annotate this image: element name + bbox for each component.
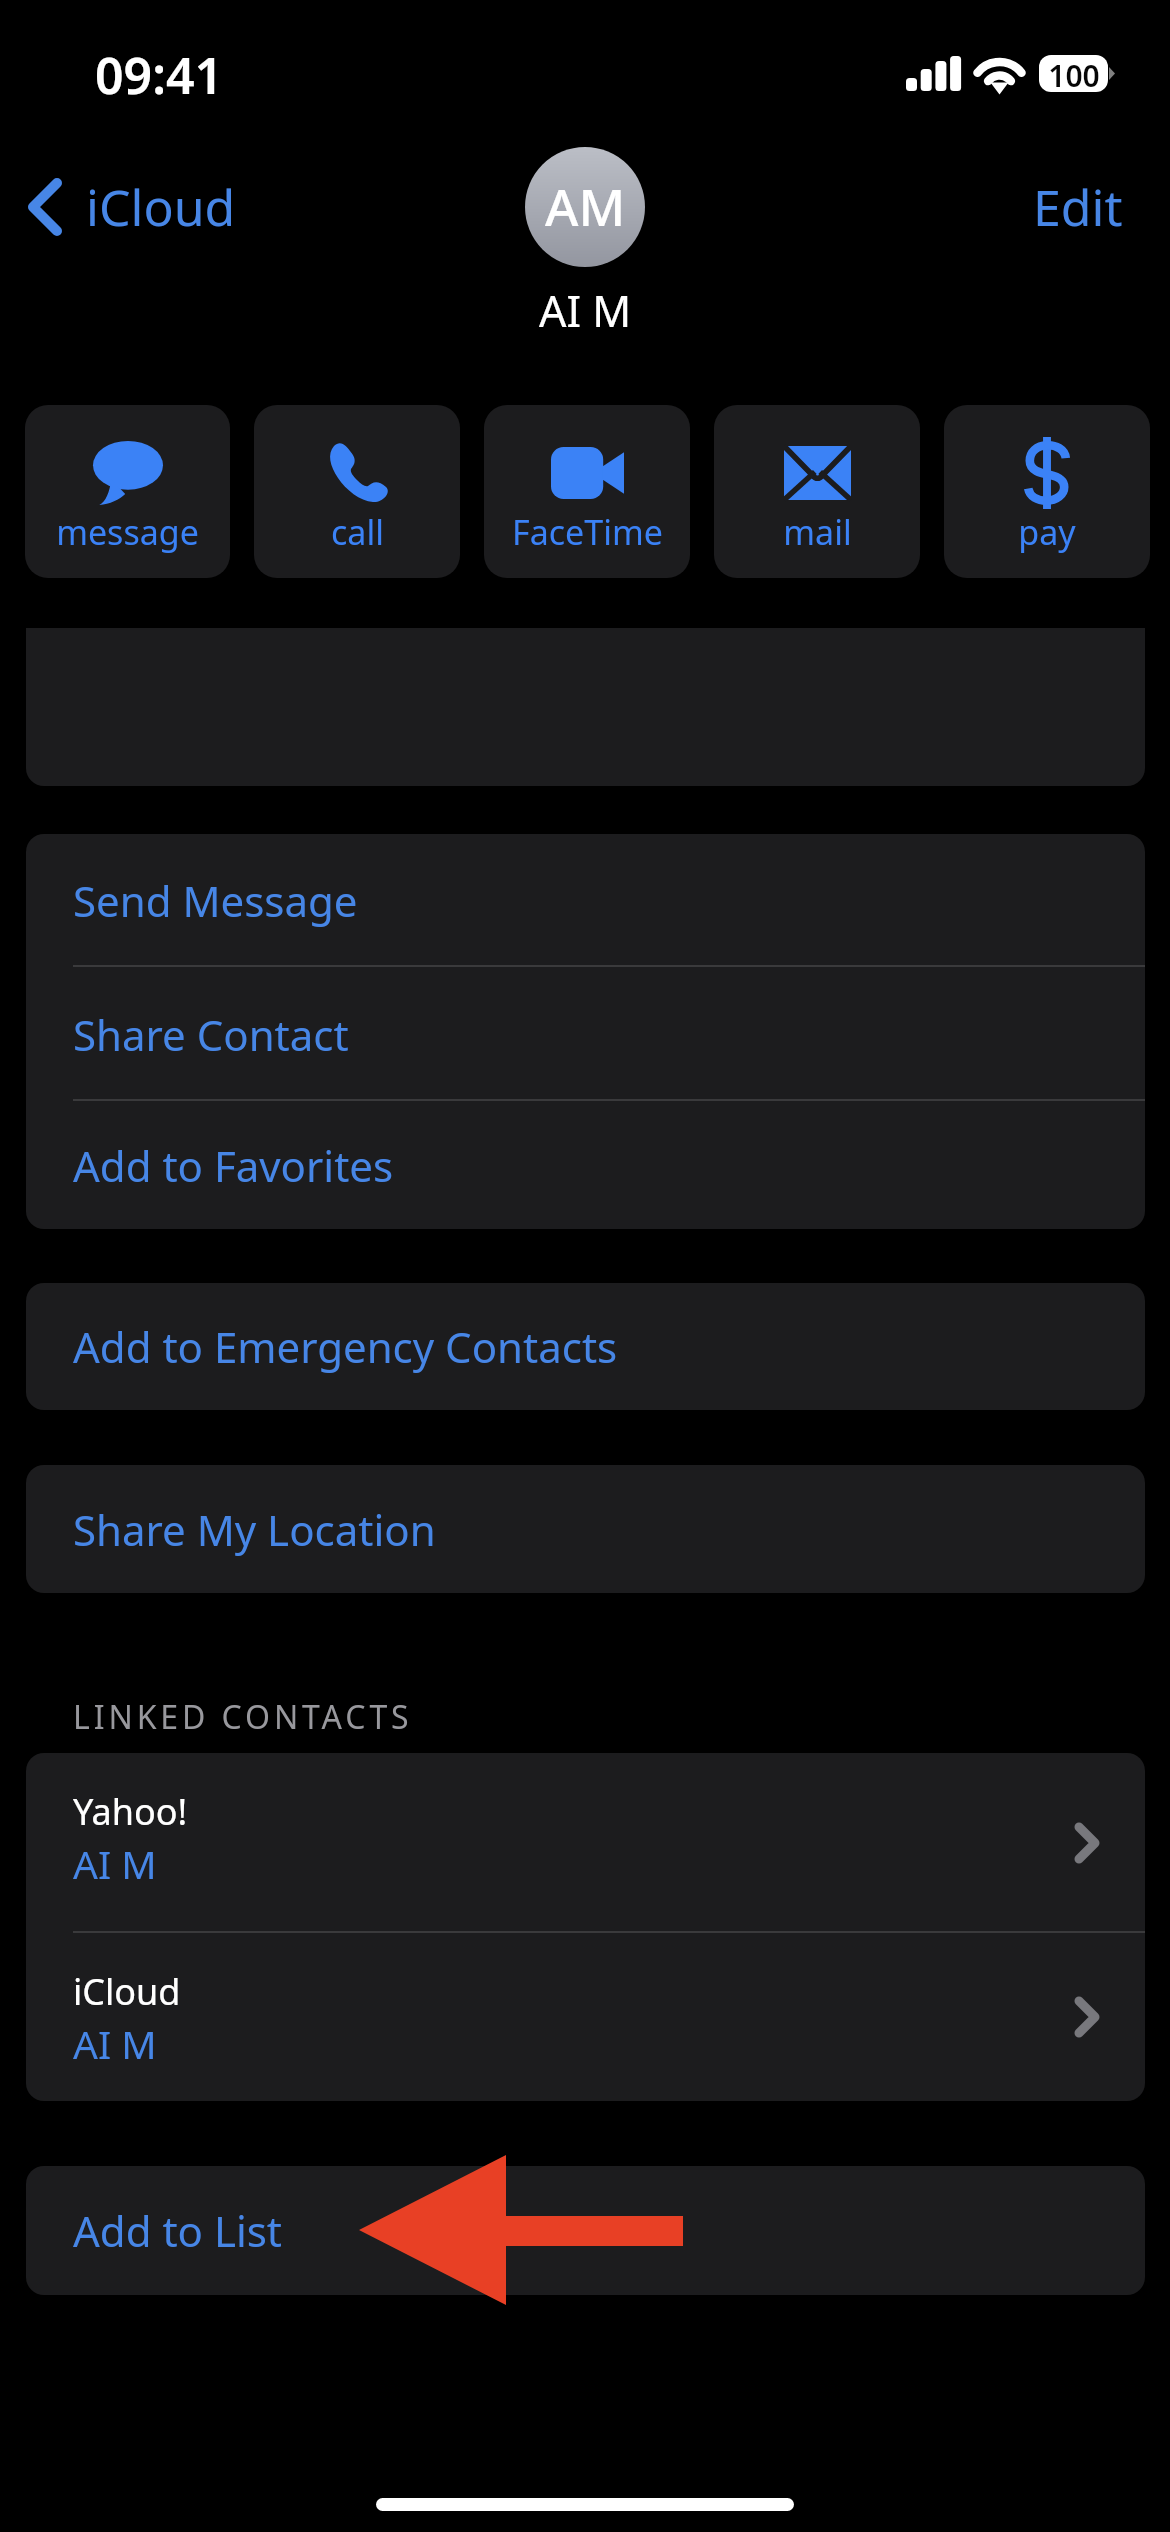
button[interactable]: Share Contact — [26, 967, 1145, 1101]
button[interactable]: Edit — [1016, 168, 1136, 246]
staticText: iCloud — [73, 1967, 181, 2016]
button[interactable]: Send Message — [26, 834, 1145, 967]
staticText: Share Contact — [73, 1006, 349, 1063]
staticText: Yahoo! — [73, 1787, 188, 1836]
staticText: AM — [545, 171, 626, 240]
staticText: Share My Location — [73, 1501, 436, 1558]
other: Back — [21, 168, 69, 246]
staticText: Add to Favorites — [73, 1137, 394, 1194]
staticText: call — [331, 509, 384, 555]
staticText: Add to List — [73, 2202, 283, 2259]
staticText: iCloud — [86, 173, 236, 241]
button[interactable]: Add to Emergency Contacts — [26, 1283, 1145, 1410]
button[interactable]: Add to Favorites — [26, 1101, 1145, 1229]
staticText: Send Message — [73, 872, 358, 929]
staticText: mail — [783, 509, 852, 555]
button[interactable]: Back — [21, 168, 236, 246]
button[interactable]: mail — [714, 405, 920, 578]
staticText: AI M — [539, 281, 632, 340]
staticText: AI M — [73, 2017, 157, 2070]
staticText: Add to Emergency Contacts — [73, 1318, 618, 1375]
staticText: LINKED CONTACTS — [73, 1695, 413, 1739]
button[interactable]: message — [25, 405, 230, 578]
staticText: FaceTime — [512, 509, 663, 555]
button[interactable]: FaceTime — [484, 405, 690, 578]
staticText: 09:41 — [95, 41, 224, 109]
staticText: AI M — [73, 1837, 157, 1890]
button[interactable]: Share My Location — [26, 1465, 1145, 1593]
button[interactable]: pay — [944, 405, 1150, 578]
button[interactable]: Add to List — [26, 2166, 1145, 2295]
staticText: pay — [1018, 509, 1076, 555]
button[interactable]: iCloud — [26, 1933, 1145, 2101]
staticText: 100 — [1048, 55, 1100, 92]
staticText: Edit — [1033, 173, 1123, 241]
button[interactable]: Contact photo — [525, 147, 645, 267]
button[interactable]: Yahoo! — [26, 1753, 1145, 1933]
button[interactable]: call — [254, 405, 460, 578]
staticText: message — [56, 509, 199, 555]
